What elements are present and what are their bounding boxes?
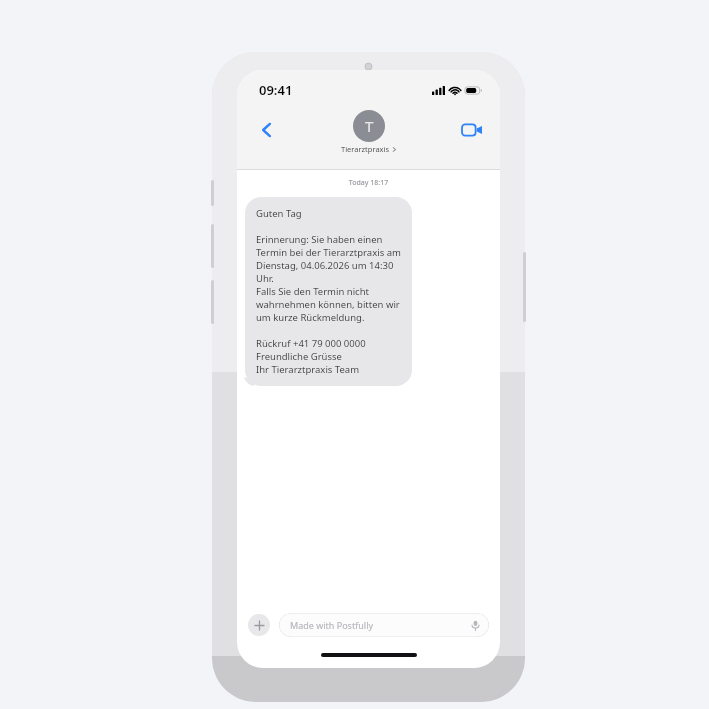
staticText: Made with Postfully (290, 619, 374, 631)
staticText: Tierarztpraxis (341, 144, 390, 154)
button[interactable]: T (341, 110, 397, 154)
button[interactable]: Back (251, 114, 283, 146)
button[interactable]: Made with Postfully (279, 613, 489, 637)
button[interactable]: Guten Tag (245, 197, 412, 386)
staticText: T (365, 116, 374, 136)
staticText: Rückruf +41 79 000 0000 Freundliche Grüs… (256, 337, 366, 376)
button[interactable]: Add attachment (248, 614, 270, 636)
button[interactable]: Voice message (469, 619, 481, 631)
button[interactable]: Video call (456, 114, 488, 146)
staticText: Erinnerung: Sie haben einen Termin bei d… (256, 233, 401, 324)
staticText: Guten Tag (256, 207, 302, 220)
staticText: Today 18:17 (237, 178, 500, 188)
staticText: 09:41 (259, 81, 293, 99)
